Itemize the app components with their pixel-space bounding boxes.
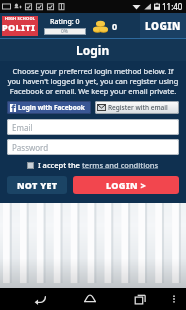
staticText: Login with Facebook <box>18 103 85 112</box>
button[interactable]: High School Politics logo <box>2 16 38 36</box>
button[interactable]: Recent apps <box>129 288 151 310</box>
staticText: Rating: 0 <box>50 17 80 27</box>
button[interactable]: Register with email <box>95 101 179 114</box>
staticText: Choose your preferred login method below… <box>7 66 179 96</box>
staticText: NOT YET <box>17 179 58 191</box>
button[interactable]: More options <box>165 290 183 308</box>
button[interactable]: Login with Facebook <box>7 101 91 114</box>
staticText: 0% <box>61 28 69 35</box>
button[interactable]: Password <box>7 139 179 155</box>
button[interactable]: LOGIN <box>140 13 186 39</box>
staticText: POLITICS <box>2 21 38 36</box>
staticText: 0 <box>112 20 118 32</box>
button[interactable]: Home <box>79 288 101 310</box>
staticText: I accept the <box>38 160 82 170</box>
button[interactable]: NOT YET <box>7 176 67 194</box>
staticText: Password <box>12 142 49 153</box>
staticText: 11:40 <box>162 1 183 12</box>
button[interactable]: Email <box>7 119 179 135</box>
staticText: HIGH SCHOOL <box>5 16 36 21</box>
staticText: LOGIN <box>145 19 181 33</box>
button[interactable]: I accept the <box>7 160 179 170</box>
staticText: Email <box>12 122 33 133</box>
staticText: LOGIN > <box>106 179 147 191</box>
button[interactable]: LOGIN > <box>73 176 179 194</box>
button[interactable]: Rating: 0 <box>44 17 86 35</box>
staticText: terms and conditions <box>82 160 159 170</box>
button[interactable]: Back <box>29 288 51 310</box>
button[interactable]: 0 <box>92 19 118 33</box>
staticText: Register with email <box>108 103 168 112</box>
staticText: Login <box>76 42 110 58</box>
